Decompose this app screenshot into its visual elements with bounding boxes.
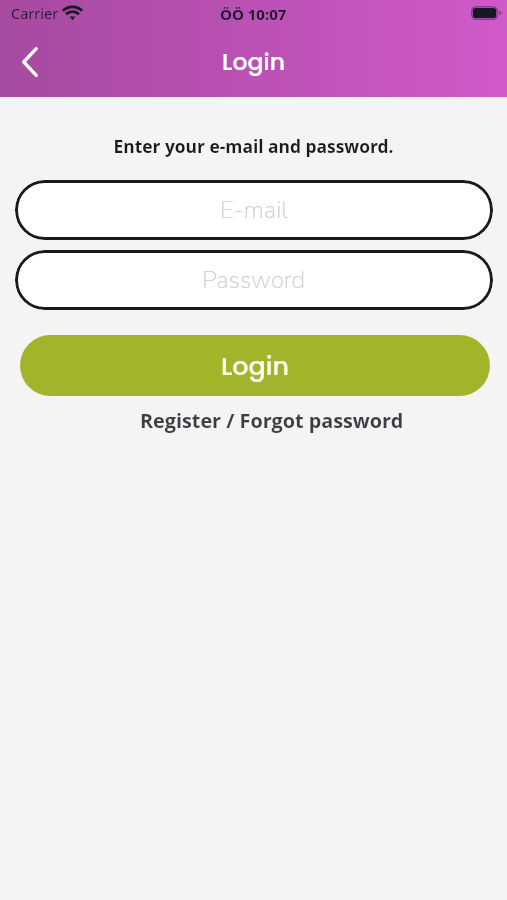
staticText: Carrier [11, 3, 59, 23]
staticText: E-mail [220, 194, 288, 227]
button[interactable]: Password [15, 250, 493, 310]
button[interactable]: Login [20, 335, 490, 396]
button[interactable]: Register / Forgot password [18, 406, 507, 434]
button[interactable]: Back [8, 40, 52, 84]
staticText: Login [222, 45, 286, 78]
staticText: ÖÖ 10:07 [220, 4, 287, 24]
staticText: Enter your e-mail and password. [0, 134, 507, 158]
staticText: Password [202, 264, 306, 297]
button[interactable]: E-mail [15, 180, 493, 240]
staticText: Login [221, 348, 289, 384]
staticText: Register / Forgot password [140, 407, 404, 434]
